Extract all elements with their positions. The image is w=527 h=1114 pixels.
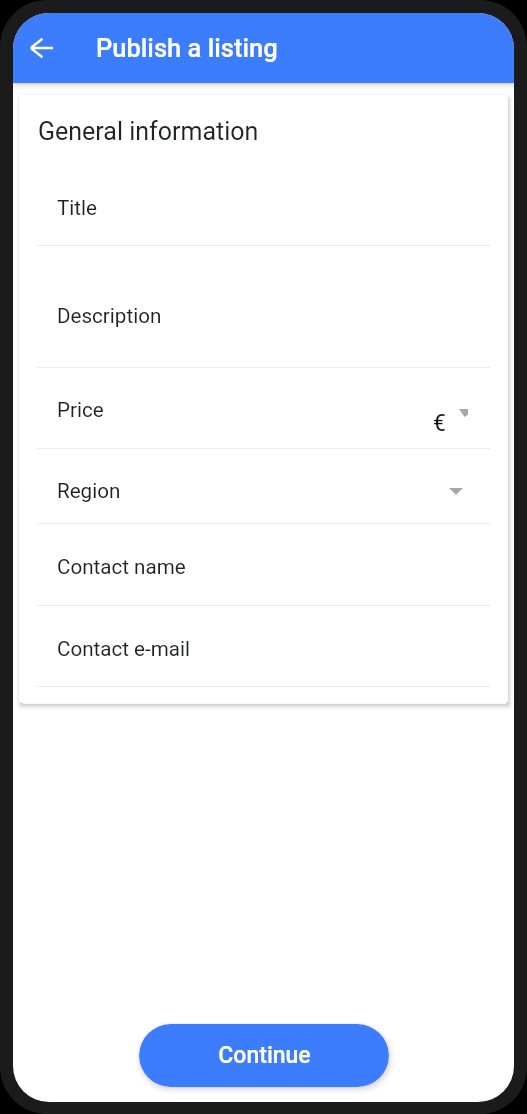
- button[interactable]: Back: [18, 25, 64, 71]
- button[interactable]: Contact name: [19, 524, 508, 605]
- button[interactable]: Title: [19, 165, 508, 245]
- button[interactable]: Continue: [139, 1024, 389, 1087]
- staticText: Region: [57, 479, 121, 503]
- staticText: €: [433, 410, 446, 437]
- button[interactable]: Description: [19, 246, 508, 367]
- button[interactable]: Contact e-mail: [19, 606, 508, 686]
- staticText: Title: [57, 196, 97, 220]
- staticText: Price: [57, 398, 104, 422]
- staticText: Contact name: [57, 555, 186, 579]
- staticText: Continue: [218, 1042, 311, 1069]
- button[interactable]: Region: [19, 449, 508, 523]
- button[interactable]: Price: [19, 368, 508, 448]
- staticText: Publish a listing: [96, 33, 278, 63]
- staticText: Contact e-mail: [57, 637, 190, 661]
- staticText: Description: [57, 304, 162, 328]
- staticText: General information: [38, 117, 259, 146]
